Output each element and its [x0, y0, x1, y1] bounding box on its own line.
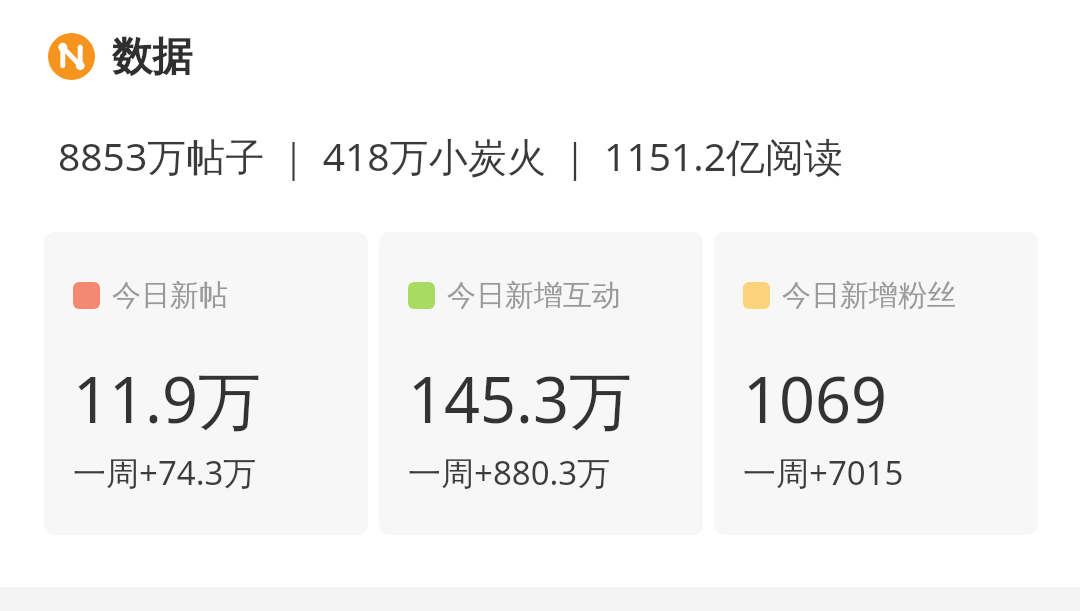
button[interactable]: 今日新增粉丝	[714, 232, 1038, 535]
other: App logo	[48, 33, 95, 80]
staticText: 一周+74.3万	[73, 450, 257, 495]
staticText: 一周+7015	[743, 450, 904, 495]
staticText: 今日新增粉丝	[782, 277, 956, 314]
staticText: 11.9万	[73, 356, 261, 442]
button[interactable]: 今日新增互动	[379, 232, 703, 535]
button[interactable]: App logo	[48, 31, 1080, 81]
staticText: 数据	[112, 31, 192, 81]
staticText: 一周+880.3万	[408, 450, 611, 495]
staticText: 今日新帖	[112, 277, 228, 314]
button[interactable]: 今日新帖	[44, 232, 368, 535]
staticText: 今日新增互动	[447, 277, 621, 314]
staticText: 145.3万	[408, 356, 633, 442]
staticText: 8853万帖子 ｜ 418万小炭火 ｜ 1151.2亿阅读	[58, 129, 844, 182]
staticText: 1069	[743, 356, 888, 442]
